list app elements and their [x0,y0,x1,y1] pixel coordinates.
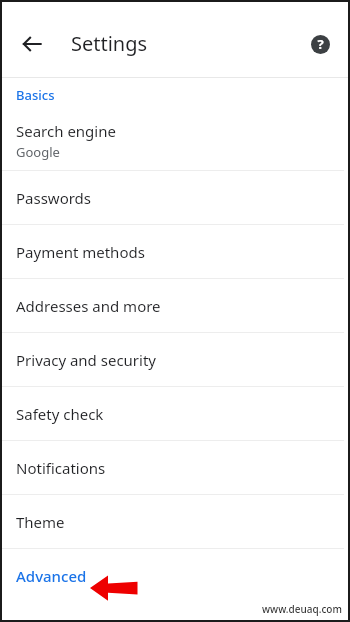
staticText: Advanced [16,566,87,586]
button[interactable]: Help [298,22,342,66]
button[interactable]: Privacy and security [0,333,350,386]
staticText: www.deuaq.com [262,602,342,616]
staticText: Passwords [16,188,92,208]
button[interactable]: Back [8,20,56,68]
staticText: Settings [71,30,148,57]
staticText: Privacy and security [16,350,156,370]
button[interactable]: Search engine [0,111,350,170]
staticText: Payment methods [16,242,145,262]
staticText: Safety check [16,404,104,424]
staticText: Addresses and more [16,296,161,316]
staticText: Theme [16,512,65,532]
button[interactable]: Payment methods [0,225,350,278]
staticText: Notifications [16,458,106,478]
staticText: Google [16,143,60,161]
button[interactable]: Theme [0,495,350,548]
button[interactable]: Safety check [0,387,350,440]
staticText: ? [317,35,324,53]
button[interactable]: Notifications [0,441,350,494]
staticText: Search engine [16,121,116,141]
button[interactable]: Addresses and more [0,279,350,332]
button[interactable]: Passwords [0,171,350,224]
staticText: Basics [16,86,55,104]
button[interactable]: Advanced [0,549,350,602]
